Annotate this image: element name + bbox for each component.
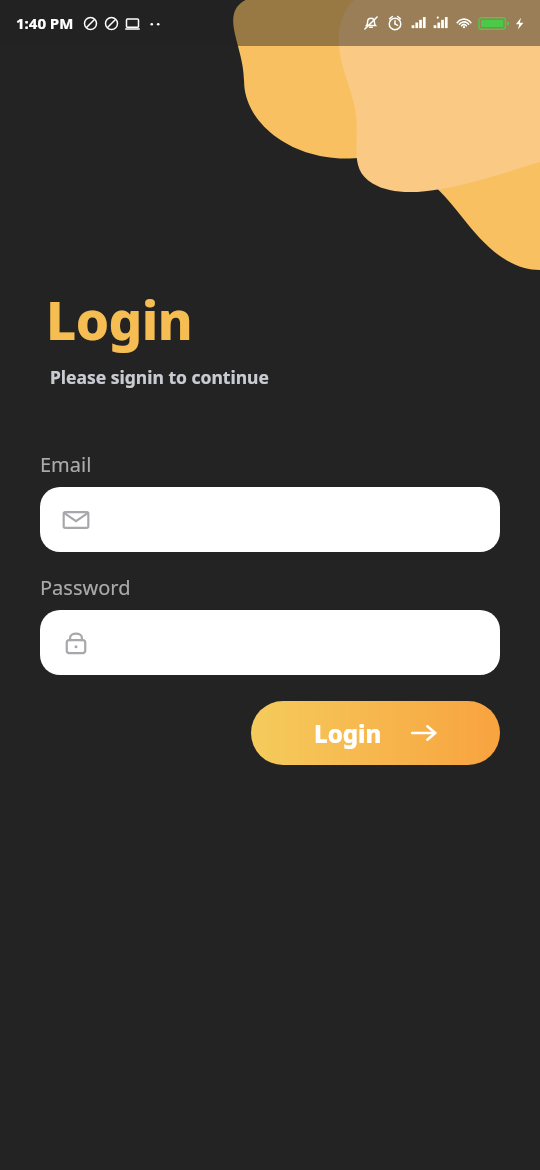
- button[interactable]: Password: [40, 610, 500, 675]
- button[interactable]: Email: [40, 487, 500, 552]
- staticText: Login: [314, 717, 382, 750]
- button[interactable]: Login: [251, 701, 500, 765]
- staticText: 1:40 PM: [16, 13, 74, 33]
- staticText: Email: [40, 451, 92, 478]
- staticText: Login: [46, 283, 193, 355]
- staticText: Password: [40, 574, 131, 601]
- staticText: Please signin to continue: [50, 365, 269, 389]
